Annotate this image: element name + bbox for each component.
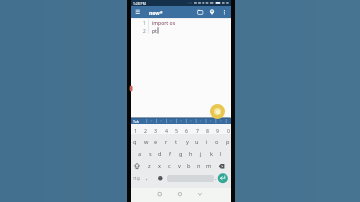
staticText: import os [152,20,176,27]
staticText: Tab [133,119,139,124]
button[interactable]: ?1☺ [117,172,157,184]
button[interactable]: l [201,148,241,160]
button[interactable]: h [171,148,211,160]
button[interactable]: v [159,160,199,172]
staticText: 6 [185,127,188,134]
button[interactable]: d [140,148,180,160]
staticText: o [215,138,219,146]
button[interactable]: r [146,136,186,148]
staticText: k [210,150,213,158]
button[interactable]: s [130,148,170,160]
button[interactable]: x [139,160,179,172]
button[interactable]: z [129,160,169,172]
staticText: p [226,138,230,146]
button[interactable] [132,162,142,170]
button[interactable] [208,8,217,17]
button[interactable] [195,8,204,17]
staticText: 7 [196,127,199,134]
button[interactable] [133,7,142,16]
button[interactable] [218,173,229,184]
staticText: g [179,150,183,158]
staticText: 2 [144,127,147,134]
staticText: 1:28 PM [133,1,146,6]
staticText: h [189,150,193,158]
button[interactable]: y [167,136,207,148]
staticText: b [187,162,191,170]
button[interactable]: i [187,136,227,148]
staticText: q [133,138,137,146]
staticText: t [175,138,178,146]
staticText: 1 [134,127,137,134]
button[interactable]: 6 [166,124,206,136]
staticText: pt [152,28,158,35]
staticText: d [158,150,162,158]
button[interactable]: b [169,160,209,172]
staticText: j [200,150,202,158]
button[interactable]: n [179,160,219,172]
staticText: f [169,150,171,158]
staticText: n [197,162,201,170]
staticText: y [186,138,189,146]
button[interactable] [210,104,225,119]
button[interactable]: u [177,136,217,148]
staticText: 5 [175,127,178,134]
button[interactable] [156,174,165,183]
staticText: v [178,162,181,170]
button[interactable] [220,8,229,17]
button[interactable]: 1 [115,124,155,136]
button[interactable]: 4 [146,124,186,136]
staticText: r [165,138,168,146]
button[interactable]: j [181,148,221,160]
staticText: 2 [143,28,146,35]
staticText: x [158,162,161,170]
staticText: i [206,138,208,146]
button[interactable]: p [208,136,248,148]
staticText: m [206,162,212,170]
staticText: 1 [143,20,146,27]
button[interactable]: 8 [187,124,227,136]
button[interactable]: . [196,172,236,184]
staticText: 0 [227,127,230,134]
button[interactable]: , [127,172,167,184]
button[interactable]: a [120,148,160,160]
button[interactable]: k [191,148,231,160]
staticText: 9 [216,127,219,134]
staticText: ?1☺ [133,176,141,181]
staticText: a [138,150,142,158]
staticText: new* [149,9,163,16]
staticText: l [220,150,222,158]
button[interactable]: f [150,148,190,160]
button[interactable]: e [136,136,176,148]
button[interactable] [153,191,161,199]
staticText: w [144,138,149,146]
staticText: s [149,150,152,158]
staticText: , [146,174,148,182]
button[interactable] [176,191,184,199]
button[interactable] [197,191,205,199]
button[interactable]: o [197,136,237,148]
staticText: 8 [206,127,209,134]
button[interactable]: 0 [208,124,248,136]
staticText: u [195,138,199,146]
button[interactable]: 2 [125,124,165,136]
button[interactable] [218,162,228,170]
staticText: . [215,174,217,182]
button[interactable]: 7 [177,124,217,136]
staticText: c [168,162,171,170]
button[interactable]: q [115,136,155,148]
button[interactable]: 5 [156,124,196,136]
button[interactable]: t [156,136,196,148]
staticText: 4 [165,127,168,134]
staticText: 3 [154,127,157,134]
button[interactable]: 9 [197,124,237,136]
staticText: e [154,138,158,146]
button[interactable]: m [189,160,229,172]
button[interactable]: g [161,148,201,160]
staticText: z [148,162,151,170]
button[interactable]: 3 [135,124,175,136]
button[interactable]: w [126,136,166,148]
button[interactable]: c [149,160,189,172]
